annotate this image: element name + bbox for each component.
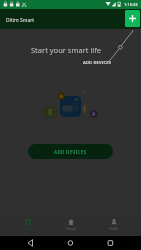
staticText: 1:15:33 (124, 2, 138, 7)
button[interactable]: Add device (125, 10, 140, 27)
staticText: Ditim Smart (6, 17, 35, 24)
staticText: ADD DEVICES (54, 149, 87, 155)
staticText: Devices (22, 227, 33, 231)
button[interactable]: Devices (6, 214, 49, 236)
staticText: ADD DEVICES (83, 60, 112, 65)
staticText: Start your smart life (31, 45, 102, 55)
button[interactable]: Scenes (49, 214, 92, 236)
button[interactable]: Profile (92, 214, 135, 236)
button[interactable]: ADD DEVICES (28, 144, 113, 159)
staticText: Scenes (66, 227, 76, 231)
staticText: Profile (109, 227, 119, 231)
